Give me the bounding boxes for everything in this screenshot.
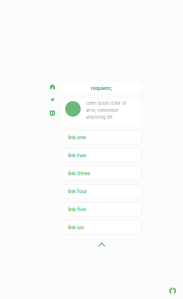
- staticText: Lorem ipsum dolor sit amet, consectetuer…: [86, 101, 126, 120]
- staticText: link one: [68, 134, 86, 141]
- button[interactable]: link five: [62, 202, 141, 216]
- button[interactable]: Reload: [169, 287, 176, 294]
- button[interactable]: link six: [62, 220, 141, 234]
- staticText: link four: [68, 188, 87, 195]
- button[interactable]: Library: [48, 108, 56, 118]
- staticText: link three: [68, 170, 90, 177]
- button[interactable]: Scroll to top: [62, 242, 141, 246]
- staticText: link six: [68, 224, 84, 231]
- button[interactable]: link three: [62, 166, 141, 180]
- button[interactable]: Home: [48, 82, 56, 91]
- button[interactable]: link four: [62, 184, 141, 198]
- button[interactable]: Send: [48, 95, 56, 104]
- button[interactable]: link one: [62, 130, 141, 144]
- staticText: link five: [68, 206, 86, 213]
- staticText: link two: [68, 152, 86, 159]
- button[interactable]: link two: [62, 148, 141, 162]
- staticText: requiem;: [91, 85, 113, 91]
